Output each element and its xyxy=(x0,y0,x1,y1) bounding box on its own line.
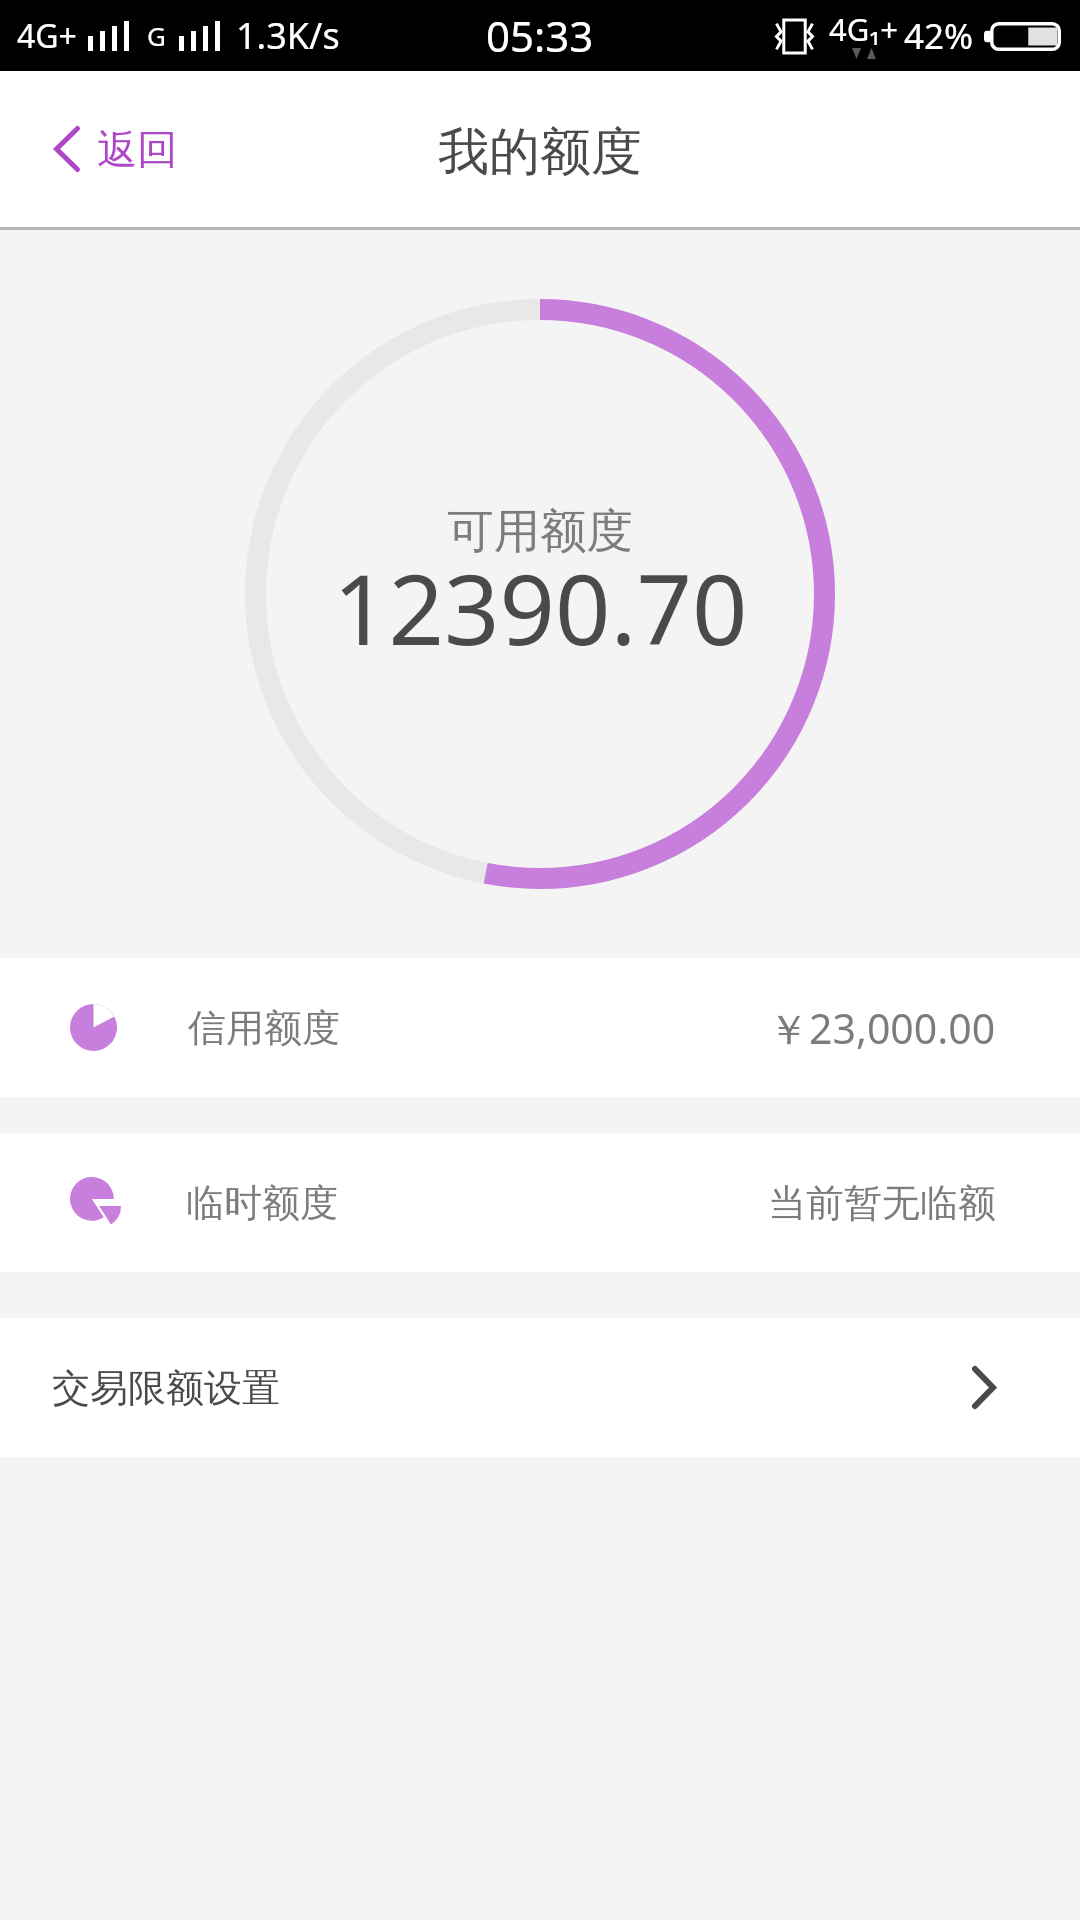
staticText: 当前暂无临额 xyxy=(768,1179,996,1227)
staticText: 交易限额设置 xyxy=(52,1364,280,1412)
staticText: 4G+ xyxy=(17,14,77,58)
other: Open transaction limit settings xyxy=(972,1366,996,1409)
staticText: 05:33 xyxy=(486,7,594,64)
button[interactable]: Back xyxy=(0,100,201,198)
staticText: 信用额度 xyxy=(188,1004,340,1052)
button[interactable]: 交易限额设置 xyxy=(0,1318,1080,1457)
button[interactable]: 信用额度 xyxy=(0,958,1080,1097)
button[interactable]: 临时额度 xyxy=(0,1133,1080,1272)
staticText: 1.3K/s xyxy=(236,11,340,60)
staticText: 我的额度 xyxy=(438,120,642,184)
staticText: 可用额度 xyxy=(447,502,633,561)
staticText: ￥23,000.00 xyxy=(768,1000,996,1056)
staticText: G xyxy=(147,18,166,53)
staticText: 4G₁+ xyxy=(829,8,898,50)
staticText: 返回 xyxy=(97,124,177,174)
other: Back xyxy=(54,126,80,172)
staticText: 临时额度 xyxy=(186,1179,338,1227)
staticText: 12390.70 xyxy=(333,541,748,673)
staticText: 42% xyxy=(904,12,974,60)
